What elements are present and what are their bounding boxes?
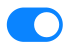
- button[interactable]: Toggle, on: [7, 7, 63, 42]
